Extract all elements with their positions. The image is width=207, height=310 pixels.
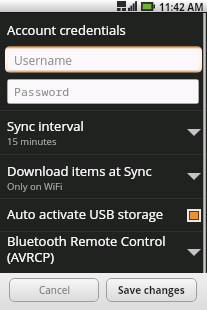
staticText: Username [14, 52, 73, 68]
staticText: Sync interval [7, 117, 84, 135]
staticText: 11:42 AM [159, 0, 204, 12]
staticText: Bluetooth Remote Control (AVRCP) [7, 232, 166, 265]
button[interactable]: Cancel [9, 278, 99, 302]
staticText: Cancel [39, 283, 70, 297]
button[interactable]: Download items at Sync [0, 155, 207, 198]
button[interactable]: Sync interval [0, 111, 207, 154]
button[interactable]: Password [8, 80, 198, 103]
staticText: Download items at Sync [7, 162, 152, 180]
staticText: Auto activate USB storage [7, 205, 164, 223]
staticText: Save changes [118, 283, 185, 297]
staticText: 15 minutes [7, 135, 57, 148]
button[interactable]: Auto activate USB storage [0, 199, 207, 231]
staticText: Password [14, 84, 70, 100]
staticText: Account credentials [7, 21, 126, 39]
button[interactable]: Username [8, 49, 199, 70]
button[interactable]: Bluetooth Remote Control (AVRCP) [0, 232, 207, 273]
staticText: Only on WiFi [7, 180, 63, 193]
button[interactable]: Save changes [106, 278, 197, 302]
